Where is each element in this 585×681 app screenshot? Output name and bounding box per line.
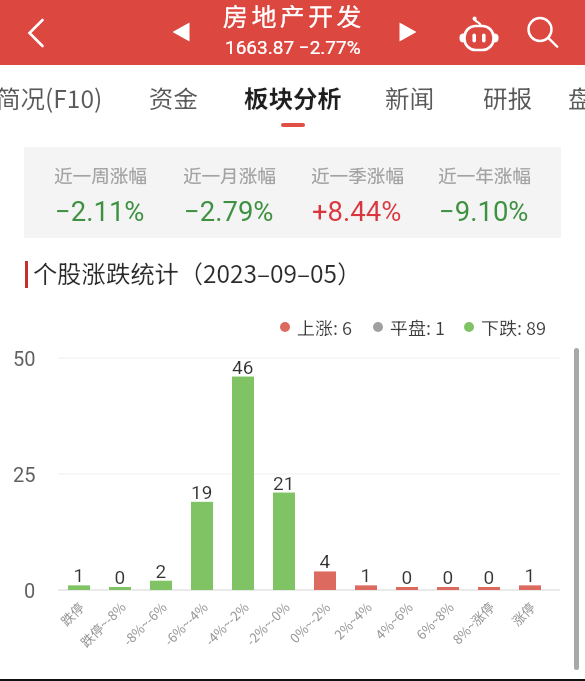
- button[interactable]: 下跌: 89: [464, 314, 547, 340]
- button[interactable]: 资金: [113, 65, 233, 127]
- staticText: −2.79%: [184, 195, 274, 227]
- staticText: +8.44%: [312, 195, 402, 227]
- button[interactable]: AI assistant: [458, 13, 500, 55]
- staticText: 简况(F10): [0, 80, 103, 115]
- staticText: 1663.87 −2.77%: [225, 36, 361, 58]
- staticText: 平盘: 1: [390, 314, 446, 340]
- button[interactable]: 板块分析: [233, 65, 353, 127]
- staticText: 近一季涨幅: [311, 161, 404, 188]
- staticText: −2.11%: [55, 195, 145, 227]
- button[interactable]: Search: [521, 11, 563, 53]
- staticText: 研报: [483, 80, 532, 115]
- button[interactable]: Back: [15, 12, 57, 54]
- button[interactable]: 研报: [447, 65, 567, 127]
- staticText: 房地产开发: [223, 0, 366, 33]
- staticText: −9.10%: [439, 195, 529, 227]
- staticText: 近一年涨幅: [438, 161, 531, 188]
- staticText: 近一月涨幅: [183, 161, 276, 188]
- staticText: 个股涨跌统计（2023–09–05）: [33, 255, 362, 290]
- staticText: 上涨: 6: [297, 314, 353, 340]
- staticText: 资金: [149, 80, 198, 115]
- staticText: 盘口: [568, 80, 585, 115]
- button[interactable]: Next sector: [389, 13, 427, 51]
- button[interactable]: Previous sector: [162, 13, 200, 51]
- staticText: 近一周涨幅: [54, 161, 147, 188]
- button[interactable]: 简况(F10): [0, 65, 109, 127]
- staticText: 新闻: [385, 80, 434, 115]
- button[interactable]: 新闻: [349, 65, 469, 127]
- button[interactable]: 盘口: [532, 65, 585, 127]
- staticText: 板块分析: [244, 80, 342, 115]
- staticText: 下跌: 89: [481, 314, 547, 340]
- button[interactable]: 上涨: 6: [280, 314, 353, 340]
- button[interactable]: 平盘: 1: [373, 314, 446, 340]
